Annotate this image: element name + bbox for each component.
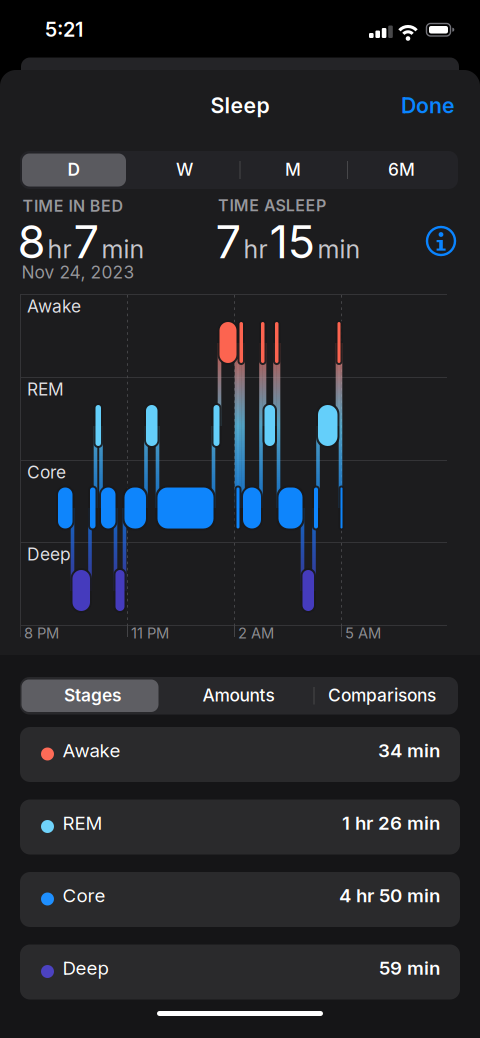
staticText: Amounts xyxy=(202,685,274,705)
staticText: 7 xyxy=(215,215,241,268)
staticText: Done xyxy=(401,93,455,118)
staticText: 1 hr 26 min xyxy=(342,812,440,834)
staticText: Sleep xyxy=(210,93,269,118)
staticText: 34 min xyxy=(378,739,440,761)
staticText: 15 xyxy=(269,215,315,268)
staticText: 5 AM xyxy=(345,624,381,642)
staticText: W xyxy=(176,159,193,180)
staticText: D xyxy=(67,159,80,180)
staticText: 8 PM xyxy=(24,624,59,642)
staticText: hr xyxy=(47,234,71,264)
staticText: Core xyxy=(27,462,66,482)
staticText: 4 hr 50 min xyxy=(339,884,440,906)
staticText: 11 PM xyxy=(131,624,169,642)
staticText: Awake xyxy=(62,739,120,761)
staticText: min xyxy=(101,234,144,264)
staticText: Deep xyxy=(62,957,108,979)
staticText: Deep xyxy=(27,544,71,564)
staticText: 7 xyxy=(73,215,99,268)
staticText: Stages xyxy=(64,685,122,705)
staticText: Nov 24, 2023 xyxy=(21,262,134,282)
staticText: TIME IN BED xyxy=(22,196,123,215)
staticText: 5:21 xyxy=(45,18,83,41)
staticText: hr xyxy=(243,234,267,264)
staticText: 2 AM xyxy=(238,624,274,642)
staticText: REM xyxy=(27,379,64,399)
staticText: Comparisons xyxy=(328,685,436,705)
staticText: M xyxy=(285,159,301,180)
staticText: REM xyxy=(62,812,102,834)
staticText: 6M xyxy=(388,159,415,180)
staticText: Awake xyxy=(27,296,81,316)
staticText: min xyxy=(317,234,360,264)
staticText: Core xyxy=(62,884,105,906)
staticText: 8 xyxy=(17,215,45,268)
staticText: 59 min xyxy=(379,957,440,979)
staticText: TIME ASLEEP xyxy=(218,196,326,215)
